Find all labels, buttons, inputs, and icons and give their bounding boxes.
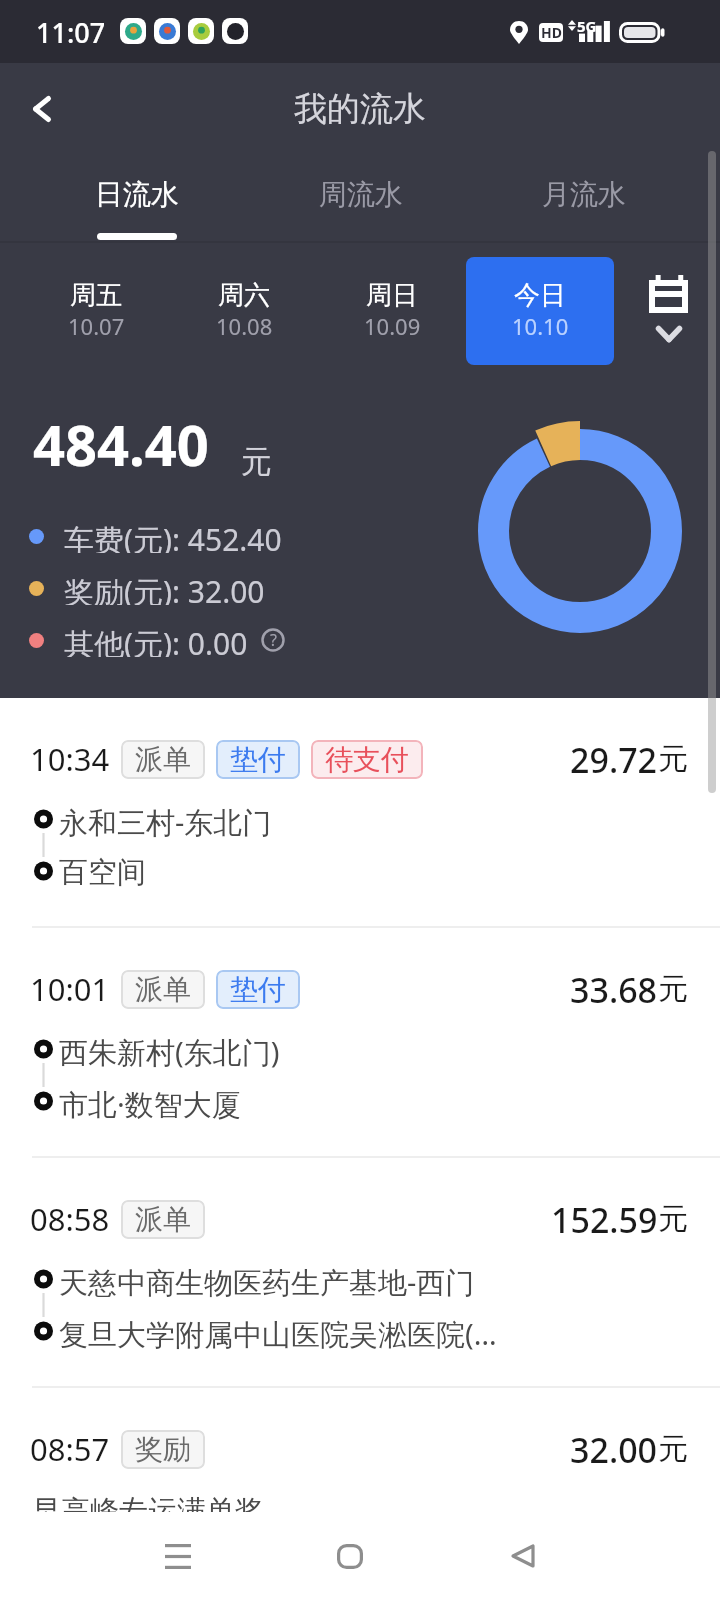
staticText: 复旦大学附属中山医院吴淞医院(… xyxy=(59,1314,720,1354)
button[interactable]: 周日 xyxy=(318,257,466,365)
staticText: 元 xyxy=(658,740,688,778)
staticText: 车费(元): 452.40 xyxy=(64,519,282,553)
staticText: 周五 xyxy=(70,279,122,312)
staticText: 元 xyxy=(658,1200,688,1238)
staticText: 今日 xyxy=(514,279,566,312)
staticText: 33.68 xyxy=(570,967,658,1011)
button[interactable]: Back xyxy=(483,1516,563,1596)
staticText: 待支付 xyxy=(325,742,409,777)
staticText: 周日 xyxy=(366,279,418,312)
button[interactable]: 08:57 xyxy=(0,1388,720,1512)
staticText: 市北·数智大厦 xyxy=(59,1084,720,1124)
button[interactable]: 08:58 xyxy=(0,1158,720,1388)
staticText: 派单 xyxy=(135,1202,191,1237)
staticText: 元 xyxy=(658,1430,688,1468)
staticText: 奖励 xyxy=(135,1432,191,1467)
staticText: 派单 xyxy=(135,742,191,777)
button[interactable]: 周五 xyxy=(22,257,170,365)
button[interactable]: 奖励 xyxy=(121,1430,205,1469)
button[interactable]: 10:34 xyxy=(0,698,720,928)
button[interactable]: 周流水 xyxy=(266,155,456,243)
staticText: 10:01 xyxy=(30,968,110,1010)
button[interactable]: Back xyxy=(18,85,66,133)
staticText: 484.40 xyxy=(33,406,209,482)
staticText: 10:34 xyxy=(30,738,110,780)
staticText: 10.09 xyxy=(364,311,421,341)
button[interactable]: 周六 xyxy=(170,257,318,365)
staticText: 周六 xyxy=(218,279,270,312)
button[interactable]: 月流水 xyxy=(489,155,679,243)
staticText: 永和三村-东北门 xyxy=(59,802,720,842)
staticText: 5G xyxy=(577,16,597,36)
button[interactable]: Home xyxy=(310,1516,390,1596)
staticText: 元 xyxy=(241,442,272,481)
staticText: 百空间 xyxy=(59,854,720,891)
staticText: 08:57 xyxy=(30,1428,110,1470)
staticText: 我的流水 xyxy=(294,88,426,130)
button[interactable]: 日流水 xyxy=(42,155,232,243)
button[interactable]: 10:01 xyxy=(0,928,720,1158)
staticText: 其他(元): 0.00 xyxy=(64,623,248,657)
staticText: 日流水 xyxy=(95,177,179,212)
button[interactable]: Choose date xyxy=(628,254,708,362)
staticText: 10.07 xyxy=(68,311,125,341)
staticText: 元 xyxy=(658,970,688,1008)
staticText: 29.72 xyxy=(570,737,658,781)
button[interactable]: 派单 xyxy=(121,1200,205,1239)
button[interactable]: 派单 xyxy=(121,740,205,779)
staticText: ? xyxy=(270,629,277,651)
staticText: 派单 xyxy=(135,972,191,1007)
button[interactable]: Help xyxy=(260,627,286,653)
button[interactable]: 待支付 xyxy=(311,740,423,779)
staticText: 垫付 xyxy=(230,742,286,777)
staticText: 11:07 xyxy=(36,14,106,51)
staticText: 32.00 xyxy=(570,1427,658,1471)
staticText: 周流水 xyxy=(319,177,403,212)
staticText: 早高峰专运满单奖 xyxy=(32,1493,264,1512)
staticText: 垫付 xyxy=(230,972,286,1007)
staticText: 10.10 xyxy=(512,311,569,341)
staticText: 西朱新村(东北门) xyxy=(59,1032,720,1072)
button[interactable]: Recent apps xyxy=(138,1516,218,1596)
staticText: 月流水 xyxy=(542,177,626,212)
staticText: 10.08 xyxy=(216,311,273,341)
staticText: 152.59 xyxy=(551,1197,658,1241)
staticText: 奖励(元): 32.00 xyxy=(64,571,265,605)
button[interactable]: 垫付 xyxy=(216,970,300,1009)
button[interactable]: 垫付 xyxy=(216,740,300,779)
staticText: 天慈中商生物医药生产基地-西门 xyxy=(59,1262,720,1302)
button[interactable]: 今日 xyxy=(466,257,614,365)
staticText: 08:58 xyxy=(30,1198,110,1240)
staticText: HD xyxy=(541,23,562,42)
button[interactable]: 派单 xyxy=(121,970,205,1009)
